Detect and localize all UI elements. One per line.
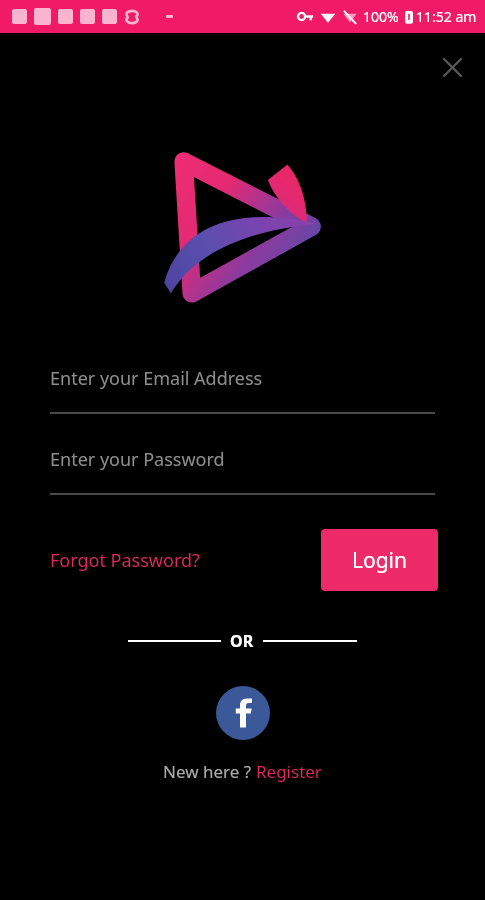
- button[interactable]: Forgot Password?: [40, 540, 210, 580]
- button[interactable]: Close: [428, 43, 476, 91]
- staticText: 11:52 am: [416, 7, 477, 26]
- staticText: Register: [256, 760, 322, 783]
- button[interactable]: Enter your Email Address: [50, 366, 435, 414]
- staticText: OR: [230, 630, 254, 652]
- staticText: New here ?: [163, 760, 256, 783]
- staticText: Enter your Password: [50, 447, 225, 472]
- staticText: Forgot Password?: [50, 548, 200, 573]
- button[interactable]: Register: [256, 760, 322, 783]
- staticText: 100%: [363, 7, 399, 26]
- button[interactable]: Enter your Password: [50, 447, 435, 495]
- button[interactable]: Login: [321, 529, 438, 591]
- button[interactable]: Sign in with Facebook: [216, 686, 270, 740]
- staticText: Enter your Email Address: [50, 366, 263, 391]
- staticText: Login: [352, 546, 408, 575]
